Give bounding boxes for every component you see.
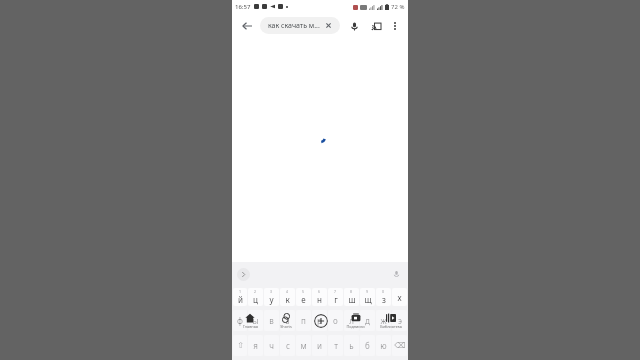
button[interactable]: More options	[387, 18, 403, 34]
staticText: 6	[318, 289, 321, 294]
button[interactable]: с	[280, 335, 295, 356]
staticText: а	[285, 315, 290, 326]
staticText: 4	[286, 289, 289, 294]
button[interactable]: Shorts	[268, 308, 303, 334]
staticText: Главная	[243, 324, 258, 329]
button[interactable]: л	[344, 310, 359, 331]
staticText: 72 %	[391, 3, 405, 11]
button[interactable]: п	[296, 310, 311, 331]
button[interactable]: ю	[376, 335, 391, 356]
staticText: как скачать м...	[268, 21, 325, 31]
staticText: к	[285, 294, 290, 305]
staticText: ⇧	[237, 341, 244, 350]
staticText: 5	[302, 289, 305, 294]
staticText: э	[398, 315, 402, 326]
button[interactable]: о	[328, 310, 343, 331]
staticText: Библиотека	[380, 324, 402, 329]
staticText: ⌫	[394, 341, 406, 350]
button[interactable]: More suggestions	[237, 268, 250, 281]
button[interactable]: 7	[328, 288, 343, 306]
staticText: й	[238, 294, 243, 305]
staticText: н	[317, 294, 322, 305]
staticText: ц	[253, 294, 258, 305]
staticText: 16:57	[235, 3, 251, 11]
button[interactable]: 8	[344, 288, 359, 306]
button[interactable]: и	[312, 335, 327, 356]
staticText: т	[334, 340, 338, 351]
staticText: г	[334, 294, 338, 305]
staticText: х	[397, 292, 402, 303]
button[interactable]: Voice input	[390, 268, 403, 281]
staticText: 8	[350, 289, 353, 294]
button[interactable]: ⌫	[392, 335, 407, 356]
staticText: п	[301, 315, 306, 326]
staticText: о	[333, 315, 338, 326]
staticText: ф	[237, 315, 243, 326]
button[interactable]: Back	[237, 16, 257, 36]
button[interactable]: ч	[264, 335, 279, 356]
button[interactable]: а	[280, 310, 295, 331]
staticText: б	[365, 340, 370, 351]
button[interactable]: 5	[296, 288, 311, 306]
button[interactable]: Главная	[232, 308, 268, 334]
staticText: у	[269, 294, 274, 305]
button[interactable]: 6	[312, 288, 327, 306]
staticText: я	[253, 340, 258, 351]
button[interactable]: ⇧	[233, 335, 247, 356]
staticText: ы	[252, 315, 259, 326]
button[interactable]: р	[312, 310, 327, 331]
button[interactable]: 9	[360, 288, 375, 306]
button[interactable]: б	[360, 335, 375, 356]
staticText: з	[382, 294, 386, 305]
button[interactable]: 1	[233, 288, 247, 306]
staticText: ч	[269, 340, 274, 351]
staticText: с	[286, 340, 290, 351]
staticText: 3	[270, 289, 273, 294]
button[interactable]: т	[328, 335, 343, 356]
staticText: щ	[364, 294, 372, 305]
button[interactable]: Библиотека	[373, 308, 408, 334]
staticText: 1	[239, 289, 242, 294]
button[interactable]: Подписки	[338, 308, 373, 334]
button[interactable]: Create	[314, 314, 328, 328]
staticText: е	[301, 294, 306, 305]
staticText: р	[317, 315, 322, 326]
button[interactable]: я	[248, 335, 263, 356]
button[interactable]: в	[264, 310, 279, 331]
staticText: в	[269, 315, 274, 326]
staticText: ш	[348, 294, 356, 305]
button[interactable]: м	[296, 335, 311, 356]
button[interactable]: Cast	[367, 17, 385, 35]
staticText: 9	[366, 289, 369, 294]
staticText: м	[300, 340, 307, 351]
staticText: 0	[382, 289, 385, 294]
staticText: 2	[254, 289, 257, 294]
staticText: л	[349, 315, 354, 326]
staticText: ю	[380, 340, 387, 351]
staticText: Подписки	[346, 324, 365, 329]
button[interactable]: ж	[376, 310, 391, 331]
button[interactable]: 3	[264, 288, 279, 306]
button[interactable]: э	[392, 310, 407, 331]
button[interactable]: как скачать м...	[260, 17, 340, 34]
staticText: и	[317, 340, 322, 351]
button[interactable]: ы	[248, 310, 263, 331]
staticText: ь	[349, 340, 354, 351]
button[interactable]: Voice search	[345, 17, 363, 35]
button[interactable]: ь	[344, 335, 359, 356]
button[interactable]: х	[392, 288, 407, 306]
staticText: д	[365, 315, 370, 326]
button[interactable]: 2	[248, 288, 263, 306]
staticText: ж	[380, 315, 387, 326]
button[interactable]: 4	[280, 288, 295, 306]
button[interactable]: ф	[233, 310, 247, 331]
button[interactable]: 0	[376, 288, 391, 306]
staticText: 7	[334, 289, 337, 294]
staticText: Shorts	[280, 324, 292, 329]
button[interactable]: д	[360, 310, 375, 331]
